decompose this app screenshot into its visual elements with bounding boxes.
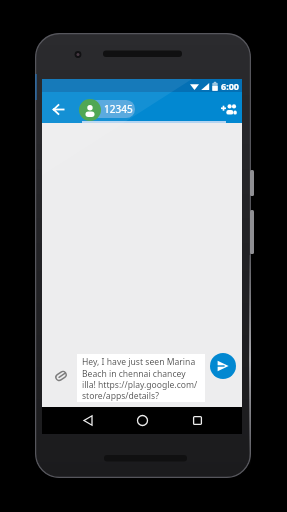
staticText: Hey, I have just seen Marina Beach in ch…	[82, 356, 198, 401]
button[interactable]	[218, 98, 240, 120]
button[interactable]	[170, 407, 225, 434]
button[interactable]	[60, 407, 115, 434]
staticText: 6:00	[221, 80, 239, 92]
button[interactable]: Hey, I have just seen Marina Beach in ch…	[77, 354, 205, 402]
button[interactable]	[115, 407, 170, 434]
button[interactable]	[210, 353, 236, 379]
button[interactable]	[50, 365, 71, 386]
button[interactable]: 12345	[82, 100, 135, 118]
staticText: 12345	[104, 102, 133, 116]
button[interactable]	[48, 99, 69, 120]
